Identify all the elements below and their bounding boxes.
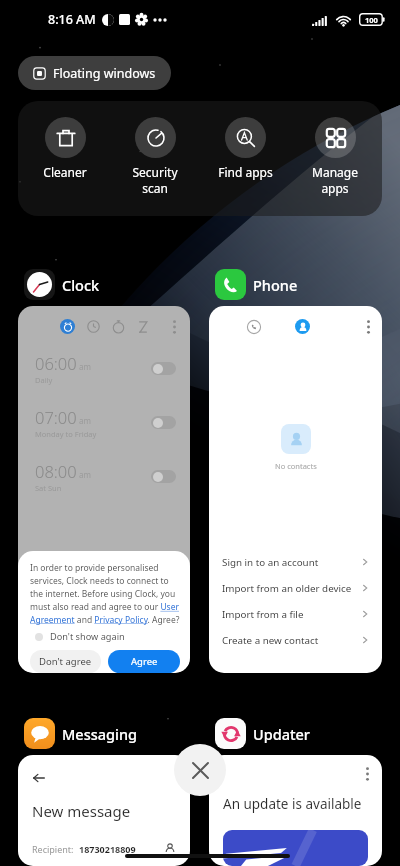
staticText: Agree [131,655,158,668]
staticText: Recipient: [32,843,74,855]
staticText: No contacts [275,461,317,471]
staticText: Daily [35,375,53,385]
button[interactable] [151,470,176,483]
staticText: apps [321,180,349,196]
button[interactable]: Security scan [112,117,198,196]
staticText: Create a new contact [222,634,319,647]
staticText: 08:00 [35,460,77,482]
staticText: Find apps [218,164,273,180]
staticText: An update is available [223,795,362,813]
staticText: Monday to Friday [35,429,97,439]
button[interactable]: Find apps [202,117,288,180]
staticText: Sat Sun [35,483,62,493]
staticText: 07:00 [35,406,77,428]
staticText: New message [32,801,131,821]
staticText: Phone [253,275,298,295]
staticText: am [79,469,91,480]
staticText: Security [132,164,178,180]
staticText: Import from an older device [222,582,352,595]
button[interactable]: Updater [215,718,310,749]
staticText: Cleaner [43,164,87,180]
button[interactable]: Floating windows [18,56,171,90]
staticText: Updater [253,724,310,744]
button[interactable]: Phone [215,269,298,300]
staticText: am [79,361,91,372]
staticText: 06:00 [35,352,77,374]
staticText: In order to provide personalised service… [30,562,180,625]
button[interactable] [151,362,176,375]
button[interactable]: Messaging [24,718,138,749]
button[interactable]: Sign in to an account [222,549,369,575]
staticText: 100 [365,15,378,25]
button[interactable]: Don't show again [30,630,125,643]
button[interactable]: Import from a file [222,601,369,627]
staticText: Manage [312,164,358,180]
staticText: Clock [62,275,100,295]
button[interactable]: Agree [108,650,180,673]
staticText: Don't agree [39,655,92,668]
staticText: Don't show again [50,630,125,643]
button[interactable]: Clock [24,269,100,300]
button[interactable]: Don't agree [30,650,101,673]
staticText: scan [142,180,168,196]
staticText: 8:16 AM [48,11,96,28]
staticText: Sign in to an account [222,556,319,569]
button[interactable]: Close all apps [174,744,226,796]
button[interactable]: Create a new contact [222,627,369,653]
staticText: 18730218809 [79,843,136,855]
button[interactable]: Manage apps [292,117,378,196]
button[interactable] [151,416,176,429]
button[interactable]: Import from an older device [222,575,369,601]
button[interactable]: Cleaner [22,117,108,180]
staticText: am [79,415,91,426]
staticText: Import from a file [222,608,304,621]
staticText: Floating windows [53,65,156,82]
staticText: Messaging [62,724,138,744]
